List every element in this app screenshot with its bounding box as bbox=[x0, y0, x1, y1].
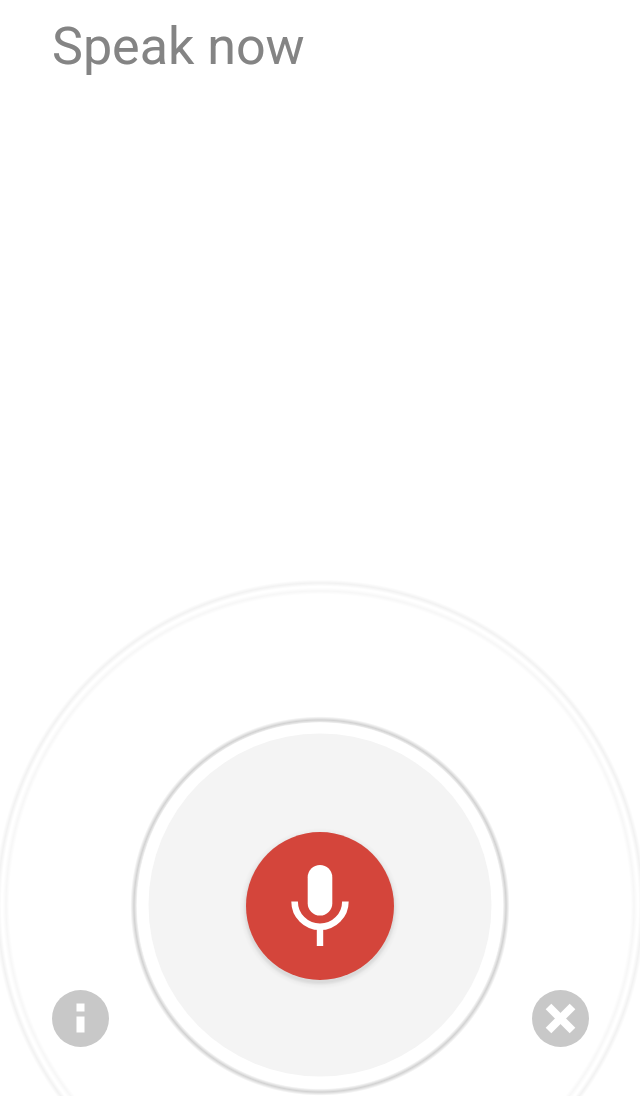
staticText: Speak now bbox=[52, 16, 305, 77]
button[interactable]: Close bbox=[532, 990, 589, 1047]
button[interactable]: Info bbox=[52, 990, 109, 1047]
